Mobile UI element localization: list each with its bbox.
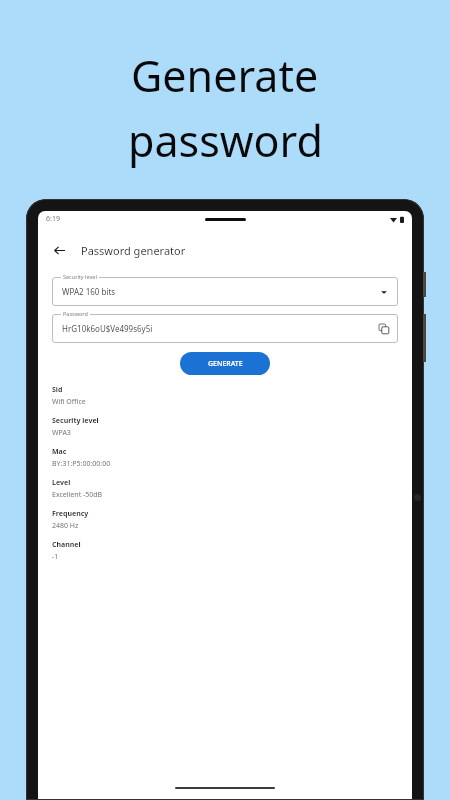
staticText: WPA2 160 bits: [62, 286, 116, 297]
staticText: password: [128, 111, 323, 170]
staticText: -1: [52, 552, 59, 562]
staticText: Generate: [131, 46, 319, 105]
staticText: Password: [63, 310, 88, 317]
button[interactable]: [52, 314, 398, 343]
button[interactable]: Copy password: [377, 322, 391, 336]
button[interactable]: GENERATE: [180, 352, 270, 375]
staticText: GENERATE: [208, 359, 243, 369]
staticText: BY:31:P5:00:00:00: [52, 459, 111, 469]
staticText: Wifi Office: [52, 397, 86, 407]
staticText: 6:19: [46, 214, 60, 224]
staticText: Mac: [52, 447, 67, 457]
staticText: Frequency: [52, 509, 89, 519]
staticText: 2480 Hz: [52, 521, 79, 531]
button[interactable]: Back: [51, 242, 68, 259]
staticText: HrG10k6oU$Ve499s6y5i: [62, 323, 153, 334]
staticText: Channel: [52, 540, 81, 550]
button[interactable]: [52, 277, 398, 306]
staticText: Sid: [52, 385, 63, 395]
staticText: Excellent -50dB: [52, 490, 103, 500]
staticText: Level: [52, 478, 71, 488]
staticText: Security level: [63, 273, 97, 280]
staticText: Security level: [52, 416, 99, 426]
button[interactable]: Open security level menu: [378, 286, 390, 298]
staticText: WPA3: [52, 428, 71, 438]
staticText: Password generator: [81, 243, 186, 258]
